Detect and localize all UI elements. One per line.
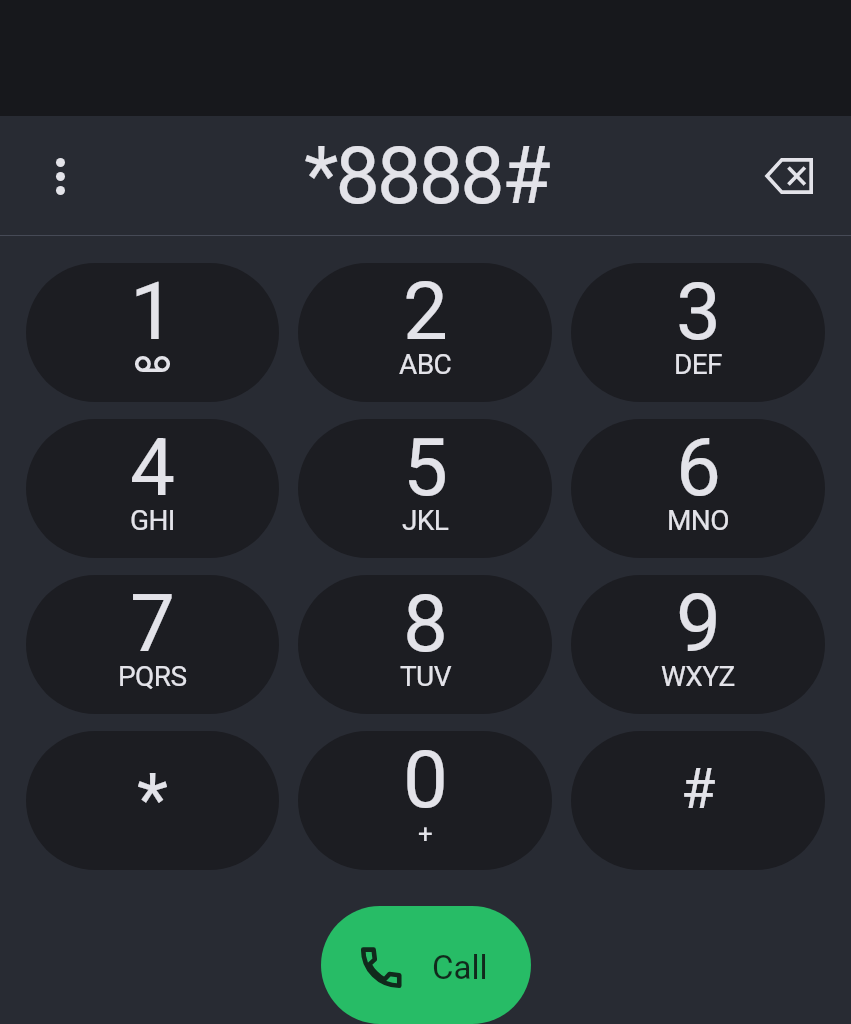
button[interactable]: 0: [298, 731, 552, 870]
staticText: Call: [432, 948, 488, 987]
staticText: JKL: [402, 504, 449, 537]
staticText: 2: [403, 265, 448, 359]
staticText: 9: [676, 577, 721, 671]
button[interactable]: 6: [571, 419, 825, 558]
staticText: 1: [130, 265, 175, 359]
button[interactable]: 4: [26, 419, 279, 558]
button[interactable]: *: [26, 731, 279, 870]
staticText: #: [681, 756, 716, 822]
staticText: ABC: [399, 348, 452, 381]
button[interactable]: More options: [20, 136, 100, 216]
staticText: PQRS: [118, 660, 187, 693]
button[interactable]: 2: [298, 263, 552, 402]
button[interactable]: 7: [26, 575, 279, 714]
staticText: WXYZ: [661, 660, 735, 693]
staticText: *: [137, 758, 169, 842]
button[interactable]: #: [571, 731, 825, 870]
button[interactable]: 9: [571, 575, 825, 714]
staticText: MNO: [667, 504, 729, 537]
staticText: *8888#: [304, 130, 548, 223]
staticText: 0: [403, 733, 448, 827]
staticText: 7: [130, 577, 175, 671]
button[interactable]: Backspace: [743, 130, 835, 222]
button[interactable]: 3: [571, 263, 825, 402]
staticText: 3: [676, 265, 721, 359]
button[interactable]: 5: [298, 419, 552, 558]
staticText: +: [418, 819, 433, 849]
button[interactable]: Call: [321, 906, 531, 1024]
button[interactable]: 8: [298, 575, 552, 714]
button[interactable]: 1: [26, 263, 279, 402]
staticText: 6: [676, 421, 721, 515]
staticText: TUV: [400, 660, 451, 693]
staticText: GHI: [130, 504, 175, 537]
staticText: 5: [403, 421, 448, 515]
staticText: 8: [403, 577, 448, 671]
staticText: DEF: [674, 348, 722, 381]
staticText: 4: [130, 421, 175, 515]
